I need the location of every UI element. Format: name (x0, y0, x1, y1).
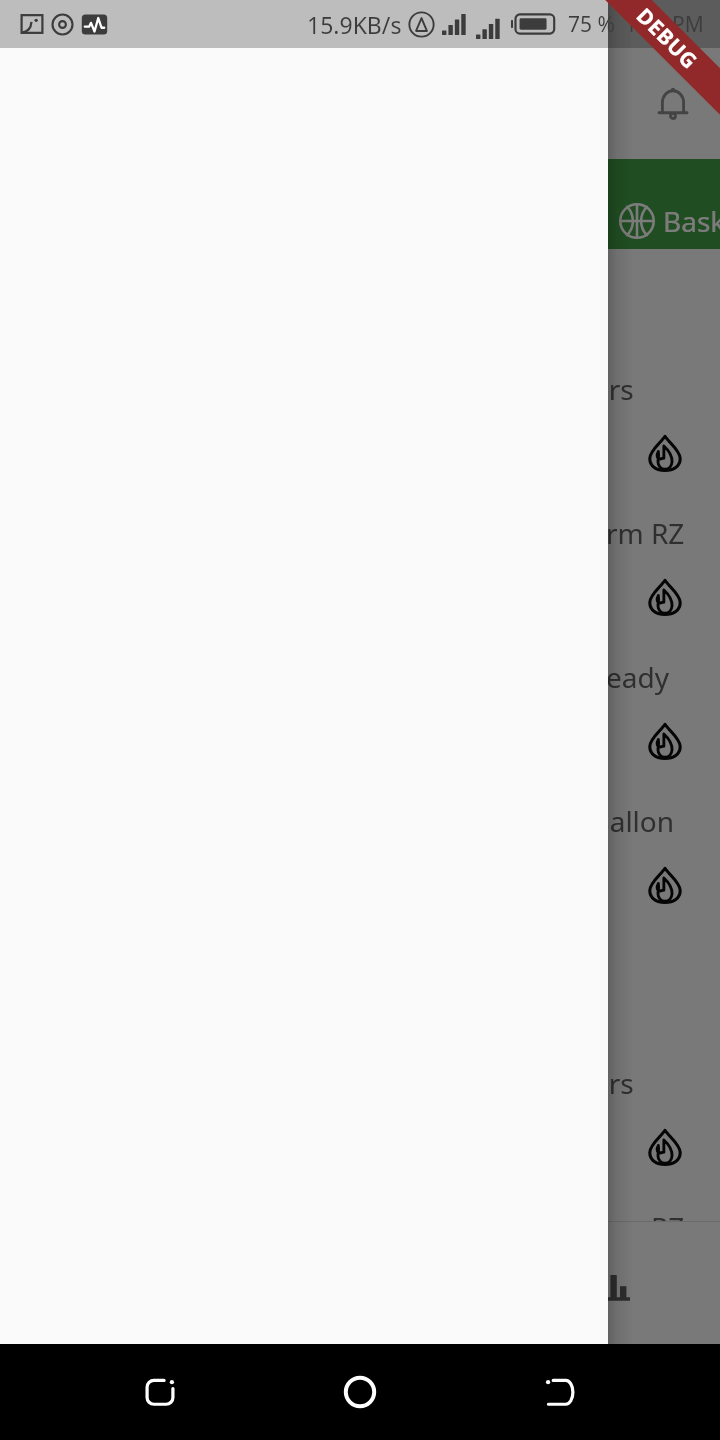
button[interactable]: Recent apps (120, 1352, 200, 1432)
staticText: Basketball (663, 202, 720, 240)
button[interactable]: Nike Air Stars (0, 367, 720, 511)
button[interactable]: Home (320, 1352, 400, 1432)
button[interactable]: Nike Adidas Ballon (0, 799, 720, 943)
staticText: Nike Zoom Already (420, 658, 670, 696)
button[interactable]: Nike Air Storm RZ (0, 511, 720, 655)
staticText: Nike Adidas Ballon (429, 802, 675, 840)
staticText: Nike Air Storm RZ (453, 1208, 685, 1246)
staticText: Nike Air Storm RZ (453, 514, 685, 552)
button[interactable]: Nike Air Stars (0, 1061, 720, 1205)
staticText: 15.9KB/s (307, 9, 402, 40)
staticText: 1:46 PM (625, 10, 704, 39)
button[interactable]: Stats (552, 1248, 672, 1318)
button[interactable]: Nike Air Storm RZ (0, 1205, 720, 1344)
staticText: 75 % (568, 10, 615, 39)
staticText: Nike Air Stars (457, 1064, 634, 1102)
button[interactable] (0, 0, 608, 1344)
button[interactable]: Nike Zoom Already (0, 655, 720, 799)
staticText: DEBUG (630, 1, 704, 76)
button[interactable]: Back (520, 1352, 600, 1432)
staticText: Nike Air Stars (457, 370, 634, 408)
button[interactable]: Basketball (618, 195, 720, 247)
button[interactable]: Notifications (642, 73, 704, 135)
